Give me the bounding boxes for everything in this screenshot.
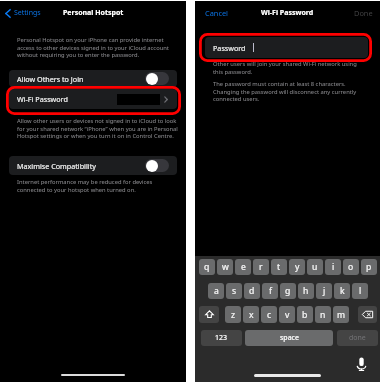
button[interactable]: l [352,283,368,299]
staticText: v [285,309,290,321]
button[interactable]: n [315,306,331,323]
button[interactable]: a [208,283,224,299]
staticText: Personal Hotspot on your iPhone can prov… [17,36,182,58]
staticText: i [332,261,335,273]
staticText: space [280,333,299,343]
staticText: m [337,309,346,321]
staticText: done [349,333,366,343]
staticText: u [312,261,318,273]
button[interactable]: y [289,259,305,275]
staticText: Allow Others to Join [17,74,84,84]
button[interactable]: x [243,306,259,323]
button[interactable]: s [226,283,242,299]
staticText: Wi-Fi Password [17,94,68,104]
button[interactable]: o [343,259,359,275]
button[interactable]: h [298,283,314,299]
staticText: Internet performance may be reduced for … [17,178,182,193]
button[interactable]: g [280,283,296,299]
button[interactable]: w [217,259,233,275]
staticText: j [323,285,326,297]
staticText: t [277,261,281,273]
staticText: Settings [14,8,41,18]
button[interactable]: i [325,259,341,275]
staticText: Wi-Fi Password [261,8,314,18]
staticText: Personal Hotspot [63,8,124,18]
button[interactable]: k [334,283,350,299]
button[interactable]: t [271,259,287,275]
staticText: k [340,285,345,297]
staticText: x [249,309,254,321]
button[interactable]: m [333,306,349,323]
staticText: c [267,309,272,321]
staticText: q [204,261,210,273]
button[interactable]: Toggle [145,72,169,85]
button[interactable]: Wi-Fi Password [9,89,177,109]
staticText: a [214,285,219,297]
staticText: Password [213,43,246,53]
button[interactable]: space [245,330,333,346]
button[interactable]: Dictation [356,357,367,371]
staticText: y [295,261,300,273]
button[interactable]: d [244,283,260,299]
staticText: d [249,285,255,297]
staticText: b [302,309,308,321]
button[interactable]: q [199,259,215,275]
staticText: Other users will join your shared Wi-Fi … [213,60,363,75]
button[interactable]: Backspace [358,306,377,323]
button[interactable]: Settings [5,8,41,18]
button[interactable]: f [262,283,278,299]
button[interactable]: r [253,259,269,275]
button[interactable]: done [337,330,378,346]
staticText: Allow other users or devices not signed … [17,117,180,139]
button[interactable]: Allow Others to Join [9,70,177,87]
button[interactable]: Shift [199,306,219,323]
staticText: h [303,285,309,297]
button[interactable]: Password [205,37,368,58]
staticText: Maximise Compatibility [17,161,96,171]
button[interactable]: z [225,306,241,323]
staticText: f [269,285,272,297]
button[interactable]: p [361,259,377,275]
button[interactable]: e [235,259,251,275]
staticText: w [222,261,229,273]
staticText: o [348,261,354,273]
button[interactable]: 123 [201,330,242,346]
staticText: 123 [215,333,228,343]
staticText: z [231,309,236,321]
button[interactable]: c [261,306,277,323]
button[interactable]: Maximise Compatibility [9,156,177,175]
button[interactable]: Done [354,8,373,18]
staticText: l [359,285,362,297]
staticText: n [320,309,326,321]
staticText: g [285,285,291,297]
staticText: e [241,261,246,273]
button[interactable]: Toggle [145,159,169,172]
button[interactable]: v [279,306,295,323]
staticText: The password must contain at least 8 cha… [213,80,371,102]
button[interactable]: u [307,259,323,275]
staticText: r [259,261,263,273]
staticText: p [366,261,372,273]
button[interactable]: b [297,306,313,323]
button[interactable]: Cancel [205,8,229,18]
staticText: s [232,285,237,297]
button[interactable]: j [316,283,332,299]
